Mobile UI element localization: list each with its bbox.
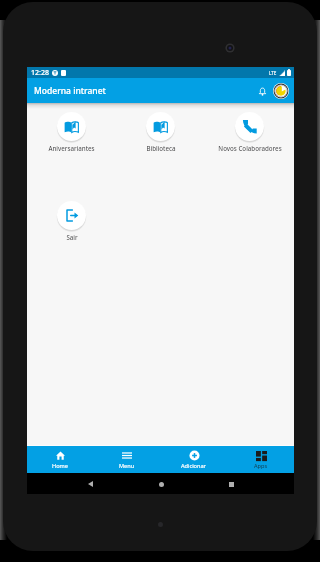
button[interactable]: Apps (227, 446, 294, 473)
button[interactable]: Home (27, 446, 93, 473)
staticText: Adicionar (181, 462, 206, 470)
staticText: Menu (119, 462, 135, 470)
staticText: Aniversariantes (48, 144, 95, 152)
button[interactable]: Home (154, 477, 168, 491)
button[interactable]: Notifications (254, 83, 271, 100)
staticText: Moderna intranet (34, 85, 106, 97)
button[interactable]: Novos Colaboradores (205, 112, 294, 152)
staticText: Novos Colaboradores (218, 144, 282, 152)
button[interactable]: Aniversariantes (27, 112, 116, 152)
staticText: 12:28 (31, 68, 49, 78)
button[interactable]: Recent apps (224, 477, 238, 491)
button[interactable]: Profile (272, 82, 290, 100)
button[interactable]: Biblioteca (116, 112, 205, 152)
button[interactable]: Adicionar (160, 446, 227, 473)
button[interactable]: Menu (93, 446, 160, 473)
staticText: Apps (254, 462, 268, 470)
staticText: Home (52, 462, 68, 470)
staticText: Biblioteca (146, 144, 176, 152)
button[interactable]: Back (83, 477, 97, 491)
staticText: Sair (66, 233, 78, 241)
staticText: LTE (269, 70, 277, 76)
button[interactable]: Sair (27, 201, 116, 241)
